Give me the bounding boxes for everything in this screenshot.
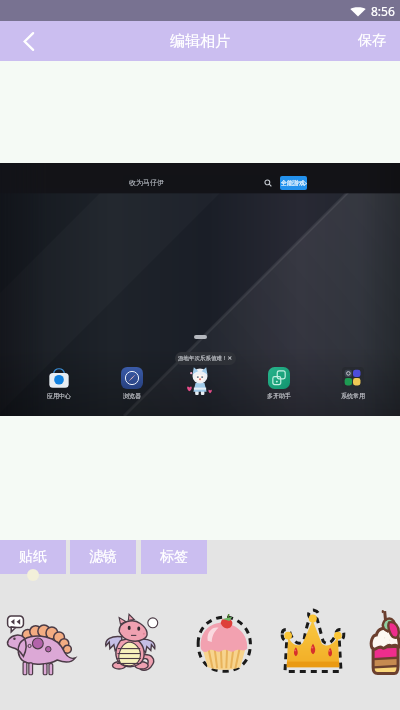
staticText: 应用中心 — [47, 392, 71, 400]
staticText: 多开助手 — [267, 392, 291, 400]
staticText: 收为马仔伊 — [129, 178, 164, 187]
staticText: 编辑相片 — [170, 32, 230, 51]
button[interactable]: 保存 — [344, 24, 400, 58]
button[interactable] — [93, 604, 169, 680]
button[interactable] — [368, 604, 400, 680]
button[interactable] — [2, 604, 78, 680]
button[interactable]: 多开助手 — [256, 367, 302, 400]
button[interactable]: 浏览器 — [109, 367, 155, 400]
button[interactable]: 贴纸 — [0, 540, 66, 574]
staticText: 游地年次乐系值难！✕ — [178, 355, 233, 362]
staticText: 浏览器 — [123, 392, 141, 400]
staticText: 贴纸 — [19, 548, 47, 566]
staticText: 系统常用 — [341, 392, 365, 400]
button[interactable]: 滤镜 — [70, 540, 136, 574]
button[interactable]: 收为马仔伊 — [123, 175, 277, 190]
button[interactable]: 系统常用 — [330, 367, 376, 400]
button[interactable]: Back — [0, 21, 57, 61]
button[interactable] — [275, 604, 351, 680]
staticText: 滤镜 — [89, 548, 117, 566]
button[interactable]: 标签 — [141, 540, 207, 574]
button[interactable] — [186, 604, 262, 680]
staticText: 标签 — [160, 548, 188, 566]
staticText: 8:56 — [371, 3, 395, 19]
button[interactable]: 应用中心 — [36, 367, 82, 400]
staticText: 保存 — [358, 32, 386, 50]
staticText: 全能游戏› — [281, 179, 307, 187]
button[interactable]: 全能游戏› — [280, 176, 307, 190]
